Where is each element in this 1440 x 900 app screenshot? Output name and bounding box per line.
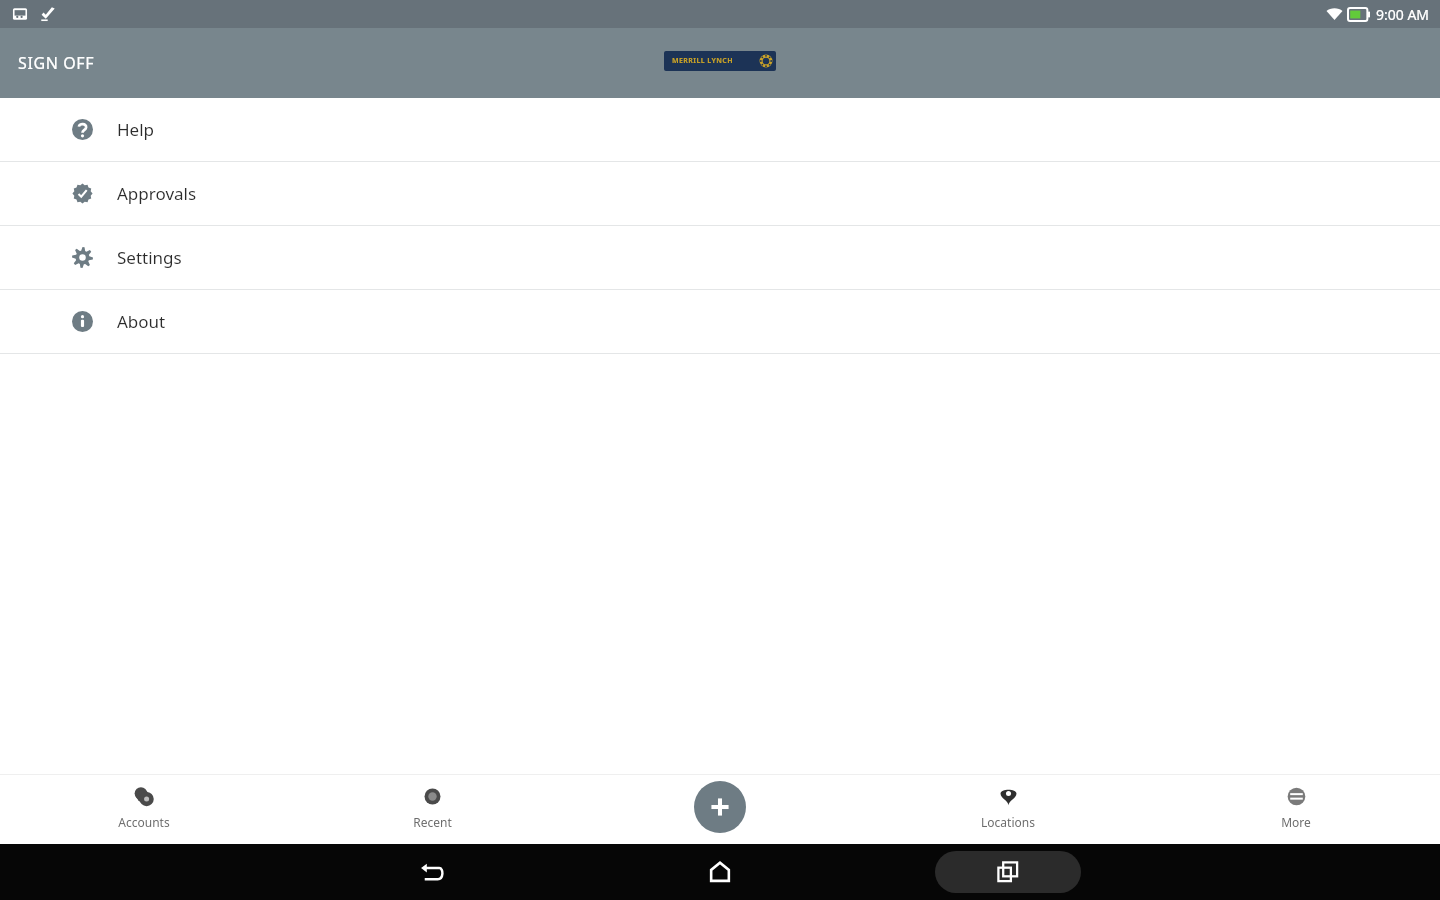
button[interactable]: About <box>0 290 1440 353</box>
staticText: Settings <box>117 246 182 269</box>
staticText: More <box>1281 814 1311 830</box>
staticText: Approvals <box>117 182 197 205</box>
staticText: Locations <box>981 814 1035 830</box>
button[interactable]: Locations <box>864 774 1152 844</box>
other: Bank logo <box>664 51 776 71</box>
button[interactable]: Help <box>0 98 1440 161</box>
staticText: MERRILL LYNCH <box>672 56 733 66</box>
staticText: 9:00 AM <box>1376 5 1430 24</box>
button[interactable]: Settings <box>0 226 1440 289</box>
button[interactable]: Add <box>694 781 746 833</box>
button[interactable]: Recent <box>288 774 576 844</box>
button[interactable]: SIGN OFF <box>0 42 113 84</box>
staticText: Help <box>117 118 155 141</box>
button[interactable]: Home <box>576 844 864 900</box>
staticText: About <box>117 310 166 333</box>
staticText: Accounts <box>118 814 170 830</box>
button[interactable]: Back <box>288 844 576 900</box>
button[interactable]: Accounts <box>0 774 288 844</box>
staticText: SIGN OFF <box>18 52 95 74</box>
staticText: Recent <box>413 814 452 830</box>
button[interactable]: More <box>1152 774 1440 844</box>
button[interactable]: Recents <box>864 844 1152 900</box>
button[interactable]: Approvals <box>0 162 1440 225</box>
